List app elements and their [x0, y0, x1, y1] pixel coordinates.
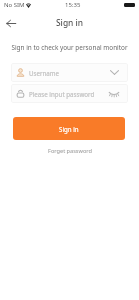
staticText: Please input password: [29, 90, 95, 98]
staticText: Sign in: [59, 125, 79, 133]
button[interactable]: Please input password: [11, 84, 128, 103]
button[interactable]: Sign in: [13, 117, 125, 140]
staticText: Sign in: [56, 17, 84, 28]
button[interactable]: Forget password: [48, 147, 92, 155]
button[interactable]: Back: [2, 15, 19, 32]
staticText: 15:35: [65, 1, 81, 9]
staticText: Sign in to check your personal monitor: [11, 43, 128, 52]
staticText: Username: [29, 69, 60, 77]
button[interactable]: Username: [11, 63, 128, 82]
staticText: No SIM: [4, 1, 25, 9]
